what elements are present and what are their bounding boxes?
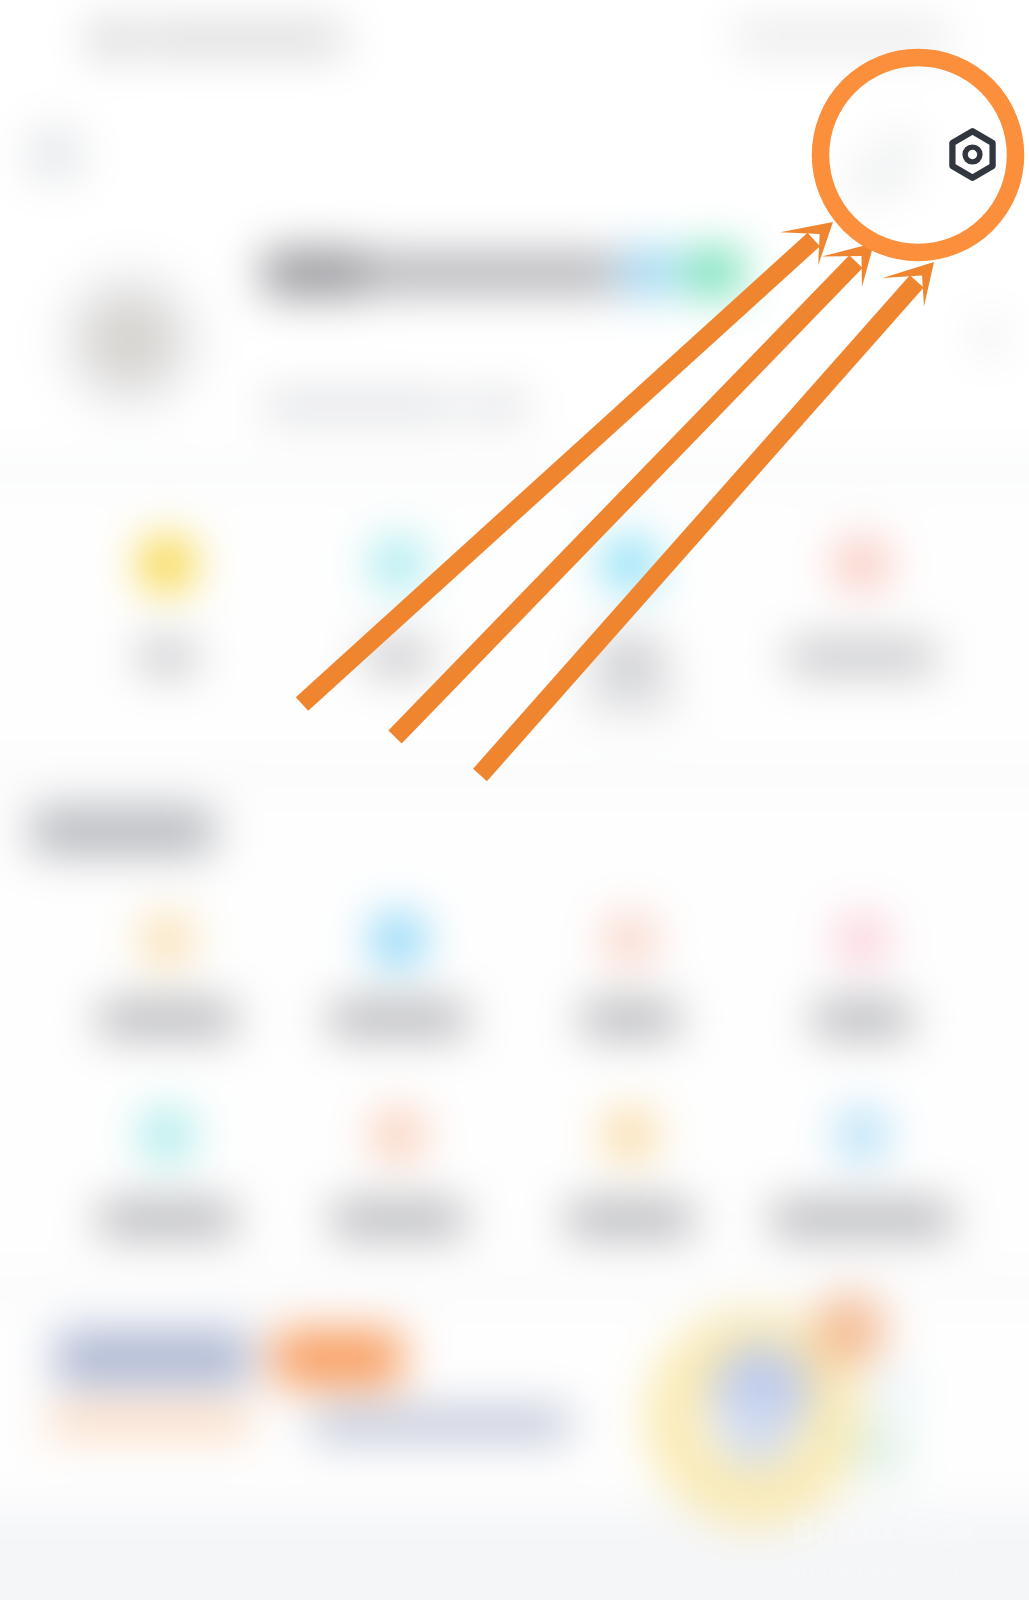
button[interactable]: [762, 500, 962, 700]
button[interactable]: [530, 500, 730, 700]
button[interactable]: [57, 1073, 277, 1223]
button[interactable]: [67, 500, 267, 700]
button[interactable]: [288, 1073, 508, 1223]
button[interactable]: [752, 1073, 972, 1223]
button[interactable]: [298, 500, 498, 700]
button[interactable]: [0, 1294, 1029, 1506]
button[interactable]: [288, 878, 508, 1028]
button[interactable]: [520, 878, 740, 1028]
button[interactable]: [752, 878, 972, 1028]
button[interactable]: Settings: [932, 114, 1013, 195]
staticText: Baidu 经验: [791, 1505, 975, 1554]
button[interactable]: [57, 878, 277, 1028]
button[interactable]: [520, 1073, 740, 1223]
